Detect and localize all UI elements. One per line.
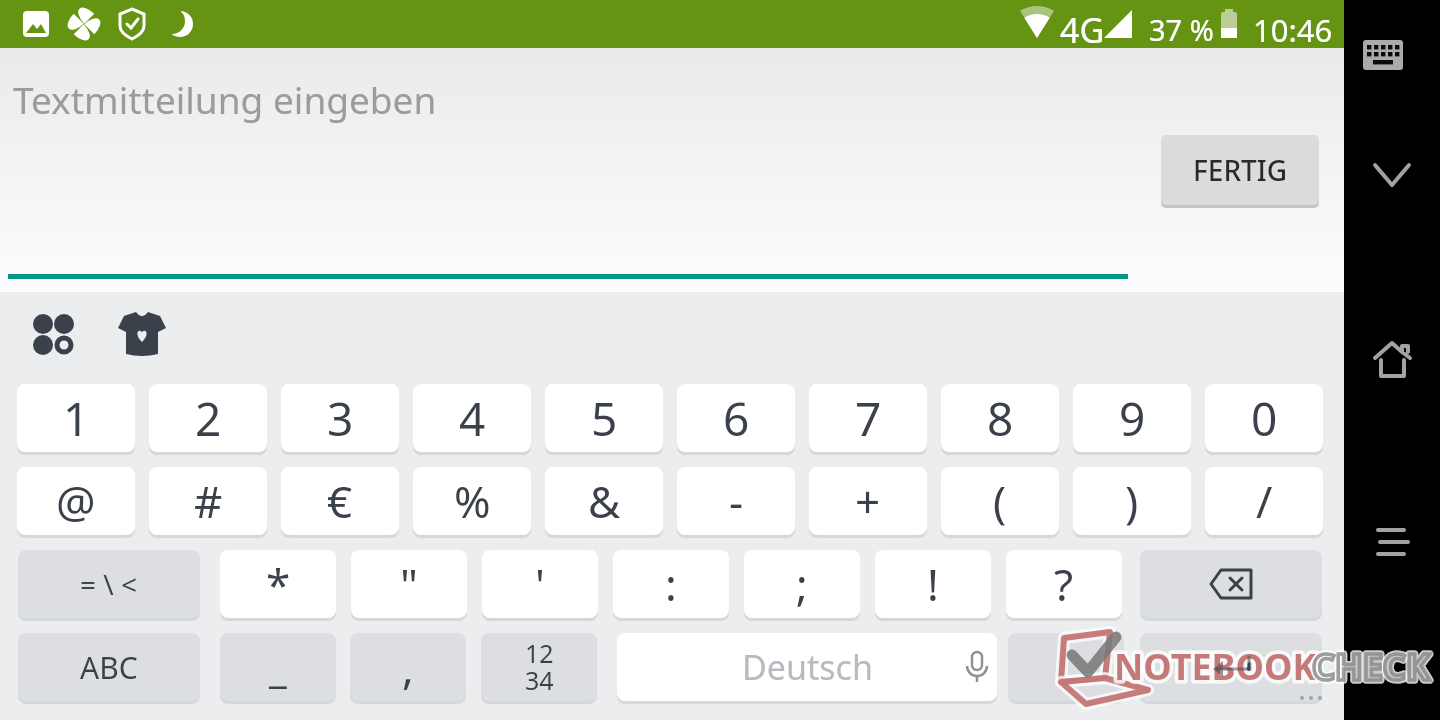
staticText: 37 % [1149, 10, 1214, 49]
staticText: 4G [1060, 7, 1105, 53]
button[interactable]: 2 [149, 384, 267, 452]
button[interactable]: ' [482, 550, 598, 618]
button[interactable]: # [149, 467, 267, 535]
staticText: Deutsch [742, 644, 873, 690]
staticText: FERTIG [1193, 151, 1288, 189]
button[interactable] [1140, 633, 1322, 701]
staticText: - [729, 471, 744, 531]
button[interactable]: 3 [281, 384, 399, 452]
staticText: : [665, 554, 677, 614]
staticText: = \ < [80, 565, 138, 603]
staticText: ? [1054, 554, 1074, 614]
button[interactable]: 1 [17, 384, 135, 452]
button[interactable]: = \ < [18, 550, 200, 618]
staticText: 1 [63, 387, 90, 450]
button[interactable]: 6 [677, 384, 795, 452]
staticText: @ [56, 471, 96, 531]
button[interactable]: ABC [18, 633, 200, 701]
staticText: 10:46 [1253, 9, 1333, 51]
staticText: # [194, 471, 223, 531]
button[interactable]: 7 [809, 384, 927, 452]
staticText: ( [993, 471, 1007, 531]
staticText: 0 [1251, 387, 1278, 450]
button[interactable] [1368, 155, 1416, 199]
button[interactable]: 0 [1205, 384, 1323, 452]
button[interactable]: ( [941, 467, 1059, 535]
staticText: € [327, 471, 353, 531]
staticText: 6 [723, 387, 750, 450]
button[interactable]: ! [875, 550, 991, 618]
button[interactable] [1140, 550, 1322, 618]
staticText: % [454, 471, 491, 531]
staticText: , [402, 637, 414, 697]
button[interactable]: * [220, 550, 336, 618]
button[interactable]: ? [1006, 550, 1122, 618]
button[interactable]: + [809, 467, 927, 535]
button[interactable]: ) [1073, 467, 1191, 535]
button[interactable] [29, 306, 77, 362]
button[interactable] [1372, 338, 1414, 382]
staticText: . [1060, 637, 1072, 697]
staticText: 12 34 [525, 636, 554, 698]
button[interactable]: - [677, 467, 795, 535]
staticText: / [1256, 471, 1273, 531]
button[interactable]: ; [744, 550, 860, 618]
button[interactable] [0, 48, 1344, 292]
button[interactable]: 12 34 [481, 633, 597, 701]
button[interactable]: 9 [1073, 384, 1191, 452]
staticText: ABC [80, 647, 138, 688]
button[interactable]: & [545, 467, 663, 535]
staticText: 8 [987, 387, 1014, 450]
button[interactable]: " [351, 550, 467, 618]
staticText: ; [796, 554, 808, 614]
staticText: CHECK [1312, 642, 1430, 691]
button[interactable]: / [1205, 467, 1323, 535]
staticText: NOTEBOOK [1114, 642, 1317, 691]
staticText: " [400, 554, 418, 614]
staticText: 4 [459, 387, 486, 450]
button[interactable]: : [613, 550, 729, 618]
button[interactable]: 4 [413, 384, 531, 452]
staticText: ' [535, 554, 545, 614]
staticText: _ [269, 640, 287, 694]
staticText: + [855, 471, 881, 531]
button[interactable]: € [281, 467, 399, 535]
staticText: Textmitteilung eingeben [13, 74, 437, 124]
staticText: 2 [195, 387, 222, 450]
staticText: NOTEBOOK [1114, 642, 1317, 691]
staticText: & [588, 471, 621, 531]
button[interactable]: . [1008, 633, 1124, 701]
staticText: 7 [855, 387, 882, 450]
button[interactable]: _ [220, 633, 336, 701]
staticText: 5 [591, 387, 618, 450]
button[interactable]: , [350, 633, 466, 701]
button[interactable] [1357, 38, 1405, 74]
staticText: ) [1125, 471, 1139, 531]
button[interactable]: 8 [941, 384, 1059, 452]
button[interactable]: FERTIG [1161, 135, 1319, 205]
staticText: 9 [1119, 387, 1146, 450]
button[interactable]: Deutsch [617, 633, 997, 701]
staticText: 3 [327, 387, 354, 450]
button[interactable]: % [413, 467, 531, 535]
button[interactable] [1374, 524, 1412, 564]
button[interactable]: @ [17, 467, 135, 535]
staticText: CHECK [1312, 642, 1430, 691]
button[interactable]: 5 [545, 384, 663, 452]
staticText: ! [927, 554, 939, 614]
button[interactable] [114, 306, 170, 362]
staticText: * [266, 554, 291, 614]
